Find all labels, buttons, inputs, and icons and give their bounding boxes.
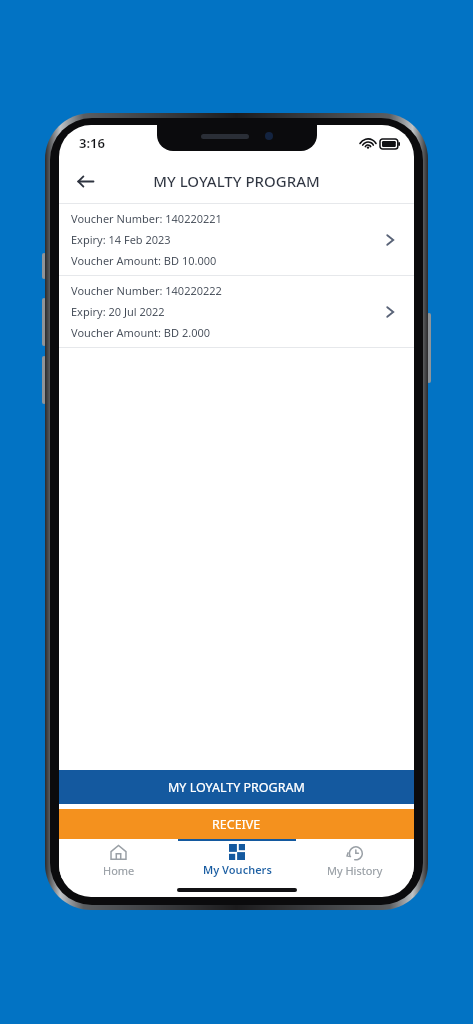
staticText: Voucher Amount: BD 10.000 bbox=[71, 253, 217, 268]
button[interactable]: Voucher Number: 140220222 bbox=[59, 276, 414, 347]
staticText: MY LOYALTY PROGRAM bbox=[168, 779, 305, 796]
staticText: My History bbox=[327, 863, 383, 878]
staticText: Expiry: 14 Feb 2023 bbox=[71, 232, 171, 247]
staticText: My Vouchers bbox=[203, 862, 272, 877]
staticText: MY LOYALTY PROGRAM bbox=[153, 171, 320, 191]
staticText: Voucher Amount: BD 2.000 bbox=[71, 325, 211, 340]
staticText: Home bbox=[103, 863, 135, 878]
button[interactable]: MY LOYALTY PROGRAM bbox=[59, 770, 414, 804]
staticText: Expiry: 20 Jul 2022 bbox=[71, 304, 165, 319]
button[interactable]: Home bbox=[59, 839, 178, 879]
button[interactable]: My Vouchers bbox=[178, 839, 296, 879]
staticText: Voucher Number: 140220221 bbox=[71, 211, 222, 226]
button[interactable]: Voucher Number: 140220221 bbox=[59, 204, 414, 275]
staticText: RECEIVE bbox=[212, 816, 261, 833]
staticText: Voucher Number: 140220222 bbox=[71, 283, 222, 298]
button[interactable]: Back bbox=[65, 161, 105, 201]
button[interactable]: RECEIVE bbox=[59, 809, 414, 839]
button[interactable]: My History bbox=[296, 839, 414, 879]
staticText: 3:16 bbox=[79, 134, 105, 152]
